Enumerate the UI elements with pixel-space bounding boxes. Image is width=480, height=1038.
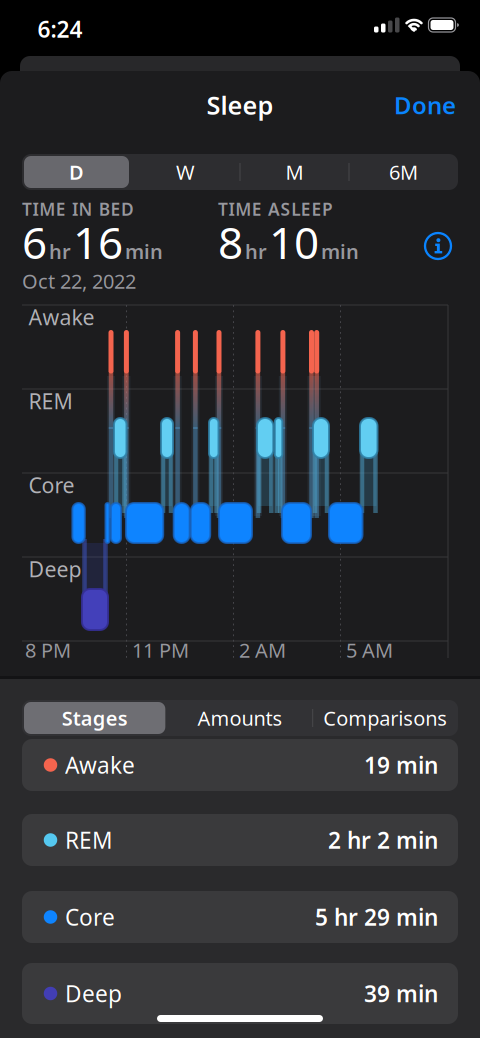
staticText: D [69, 159, 84, 185]
button[interactable]: Amounts [167, 700, 313, 736]
staticText: 6 [22, 213, 47, 271]
staticText: REM [65, 825, 113, 855]
staticText: hr [245, 238, 267, 265]
staticText: Deep [28, 555, 81, 583]
staticText: M [285, 159, 303, 185]
staticText: Sleep [206, 88, 273, 122]
staticText: Awake [28, 303, 94, 331]
staticText: Stages [62, 705, 128, 731]
staticText: Comparisons [323, 705, 447, 731]
staticText: 11 PM [132, 637, 189, 663]
staticText: hr [49, 238, 71, 265]
staticText: 6M [389, 159, 418, 185]
staticText: 5 AM [346, 637, 393, 663]
staticText: Done [394, 89, 456, 121]
staticText: min [321, 238, 359, 265]
button[interactable]: Awake [22, 739, 458, 791]
button[interactable]: 6M [349, 154, 458, 190]
button[interactable]: Core [22, 891, 458, 943]
staticText: W [176, 159, 195, 185]
staticText: Core [65, 902, 115, 932]
staticText: Awake [65, 750, 135, 780]
button[interactable]: Deep [22, 963, 458, 1024]
staticText: Core [28, 471, 74, 499]
staticText: 39 min [364, 978, 438, 1008]
staticText: Deep [65, 978, 122, 1008]
staticText: Amounts [197, 705, 282, 731]
staticText: 5 hr 29 min [315, 902, 438, 932]
staticText: 2 AM [239, 637, 286, 663]
staticText: 6:24 [37, 14, 82, 44]
staticText: min [125, 238, 163, 265]
button[interactable]: Done [376, 85, 456, 125]
staticText: 10 [269, 213, 319, 271]
staticText: REM [28, 387, 72, 415]
staticText: 2 hr 2 min [328, 825, 438, 855]
button[interactable]: REM [22, 814, 458, 866]
staticText: 8 PM [25, 637, 71, 663]
staticText: TIME ASLEEP [218, 197, 333, 220]
button[interactable]: W [131, 154, 240, 190]
staticText: TIME IN BED [22, 197, 134, 220]
button[interactable]: Stages [22, 700, 167, 736]
staticText: 8 [218, 213, 243, 271]
button[interactable]: M [240, 154, 349, 190]
button[interactable]: Comparisons [313, 700, 458, 736]
staticText: 16 [73, 213, 123, 271]
staticText: 19 min [364, 750, 438, 780]
button[interactable]: Info [423, 231, 453, 261]
staticText: Oct 22, 2022 [22, 268, 136, 294]
button[interactable]: D [22, 154, 131, 190]
